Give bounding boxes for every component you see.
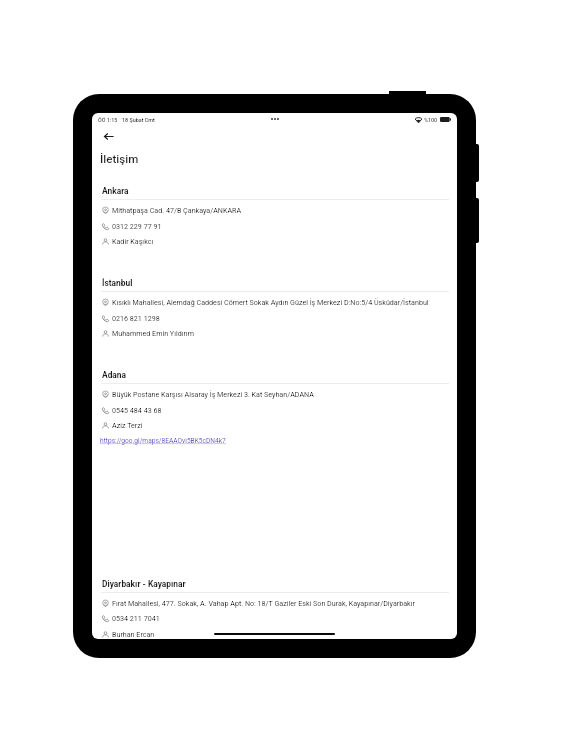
staticText: Adana bbox=[102, 370, 127, 380]
staticText: 0312 229 77 91 bbox=[112, 222, 162, 230]
staticText: Büyük Postane Karşısı Alsaray İş Merkezi… bbox=[112, 390, 314, 398]
staticText: 18 Şubat Cmt bbox=[122, 117, 155, 123]
button[interactable]: https://goo.gl/maps/8EAAOvi5BK5cDN4k7 bbox=[100, 437, 226, 445]
staticText: 0216 821 1298 bbox=[112, 314, 160, 322]
staticText: Diyarbakır - Kayapınar bbox=[102, 579, 186, 589]
staticText: Kadir Kaşıkcı bbox=[112, 237, 154, 245]
staticText: Aziz Terzi bbox=[112, 421, 143, 429]
button[interactable]: 0216 821 1298 bbox=[92, 310, 457, 325]
staticText: https://goo.gl/maps/8EAAOvi5BK5cDN4k7 bbox=[100, 437, 226, 445]
button[interactable]: Büyük Postane Karşısı Alsaray İş Merkezi… bbox=[92, 386, 457, 401]
staticText: 0545 484 43 68 bbox=[112, 406, 162, 414]
staticText: Kısıklı Mahallesi, Alemdağ Caddesi Cömer… bbox=[112, 298, 429, 306]
staticText: Burhan Ercan bbox=[112, 630, 155, 638]
button[interactable]: Kısıklı Mahallesi, Alemdağ Caddesi Cömer… bbox=[92, 294, 457, 309]
staticText: Ankara bbox=[102, 186, 129, 196]
staticText: Muhammed Emin Yıldırım bbox=[112, 329, 194, 337]
staticText: Fırat Mahallesi, 477. Sokak, A. Vahap Ap… bbox=[112, 599, 415, 607]
staticText: İstanbul bbox=[102, 278, 133, 288]
button[interactable]: Burhan Ercan bbox=[92, 626, 457, 639]
button[interactable]: Aziz Terzi bbox=[92, 417, 457, 432]
staticText: %100 bbox=[424, 117, 438, 123]
button[interactable]: Back bbox=[95, 123, 121, 149]
staticText: Mithatpaşa Cad. 47/B Çankaya/ANKARA bbox=[112, 206, 242, 214]
staticText: İletişim bbox=[100, 152, 139, 166]
button[interactable]: 0534 211 7041 bbox=[92, 610, 457, 625]
staticText: ÖÖ 1:15 bbox=[98, 117, 118, 123]
button[interactable]: Mithatpaşa Cad. 47/B Çankaya/ANKARA bbox=[92, 202, 457, 217]
button[interactable]: Muhammed Emin Yıldırım bbox=[92, 325, 457, 340]
button[interactable]: Kadir Kaşıkcı bbox=[92, 233, 457, 248]
staticText: 0534 211 7041 bbox=[112, 614, 160, 622]
button[interactable]: 0545 484 43 68 bbox=[92, 402, 457, 417]
button[interactable]: 0312 229 77 91 bbox=[92, 218, 457, 233]
button[interactable]: Fırat Mahallesi, 477. Sokak, A. Vahap Ap… bbox=[92, 595, 457, 610]
